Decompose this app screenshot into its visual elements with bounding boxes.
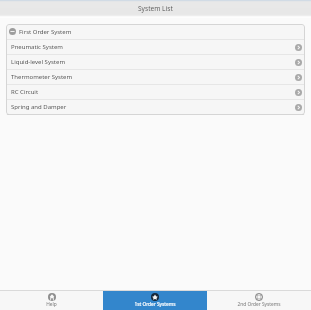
button[interactable]: Help bbox=[0, 291, 103, 310]
other: Open Spring and Damper bbox=[295, 104, 302, 111]
other: 2nd Order Systems bbox=[255, 293, 263, 301]
staticText: Spring and Damper bbox=[11, 103, 67, 111]
other: Help bbox=[48, 293, 56, 301]
button[interactable]: Pneumatic System bbox=[6, 40, 305, 54]
other: 1st Order Systems bbox=[151, 293, 159, 301]
other: Open Liquid-level System bbox=[295, 59, 302, 66]
staticText: System List bbox=[138, 4, 173, 13]
button[interactable]: Liquid-level System bbox=[6, 55, 305, 69]
button[interactable]: RC Circuit bbox=[6, 85, 305, 99]
staticText: Pneumatic System bbox=[11, 43, 63, 51]
staticText: Thermometer System bbox=[11, 73, 73, 81]
staticText: 1st Order Systems bbox=[134, 301, 176, 308]
button[interactable]: 1st Order Systems bbox=[103, 291, 207, 310]
staticText: Liquid-level System bbox=[11, 58, 66, 66]
other: Open Thermometer System bbox=[295, 74, 302, 81]
button[interactable]: First Order System bbox=[6, 24, 305, 39]
button[interactable]: Thermometer System bbox=[6, 70, 305, 84]
staticText: First Order System bbox=[19, 28, 72, 36]
staticText: 2nd Order Systems bbox=[237, 301, 281, 308]
staticText: Help bbox=[46, 301, 57, 308]
other: Open RC Circuit bbox=[295, 89, 302, 96]
button[interactable]: 2nd Order Systems bbox=[207, 291, 311, 310]
button[interactable]: Spring and Damper bbox=[6, 100, 305, 114]
other: Open Pneumatic System bbox=[295, 44, 302, 51]
staticText: RC Circuit bbox=[11, 88, 39, 96]
